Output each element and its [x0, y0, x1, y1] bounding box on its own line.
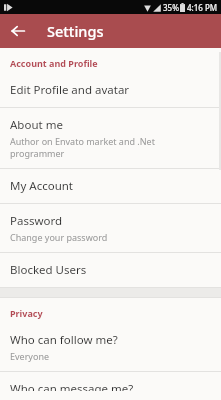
- staticText: 35%: [163, 2, 179, 13]
- staticText: My Account: [10, 178, 73, 194]
- staticText: Who can follow me?: [10, 332, 118, 348]
- staticText: About me: [10, 117, 63, 133]
- staticText: Edit Profile and avatar: [10, 82, 130, 98]
- staticText: Everyone: [10, 350, 50, 362]
- staticText: Account and Profile: [10, 57, 98, 69]
- button[interactable]: Blocked Users: [0, 253, 221, 287]
- button[interactable]: Back: [6, 19, 30, 43]
- staticText: Password: [10, 213, 63, 229]
- button[interactable]: Who can message me?: [0, 372, 221, 400]
- staticText: Blocked Users: [10, 262, 87, 278]
- staticText: Who can message me?: [10, 381, 134, 391]
- button[interactable]: Edit Profile and avatar: [0, 73, 221, 107]
- staticText: Settings: [47, 21, 104, 41]
- button[interactable]: My Account: [0, 169, 221, 203]
- staticText: Author on Envato market and .Net program…: [10, 135, 211, 159]
- staticText: Change your password: [10, 231, 108, 243]
- staticText: 4:16 PM: [187, 2, 218, 13]
- button[interactable]: Password: [0, 204, 221, 252]
- staticText: Privacy: [10, 307, 43, 319]
- button[interactable]: About me: [0, 108, 221, 168]
- button[interactable]: Who can follow me?: [0, 323, 221, 371]
